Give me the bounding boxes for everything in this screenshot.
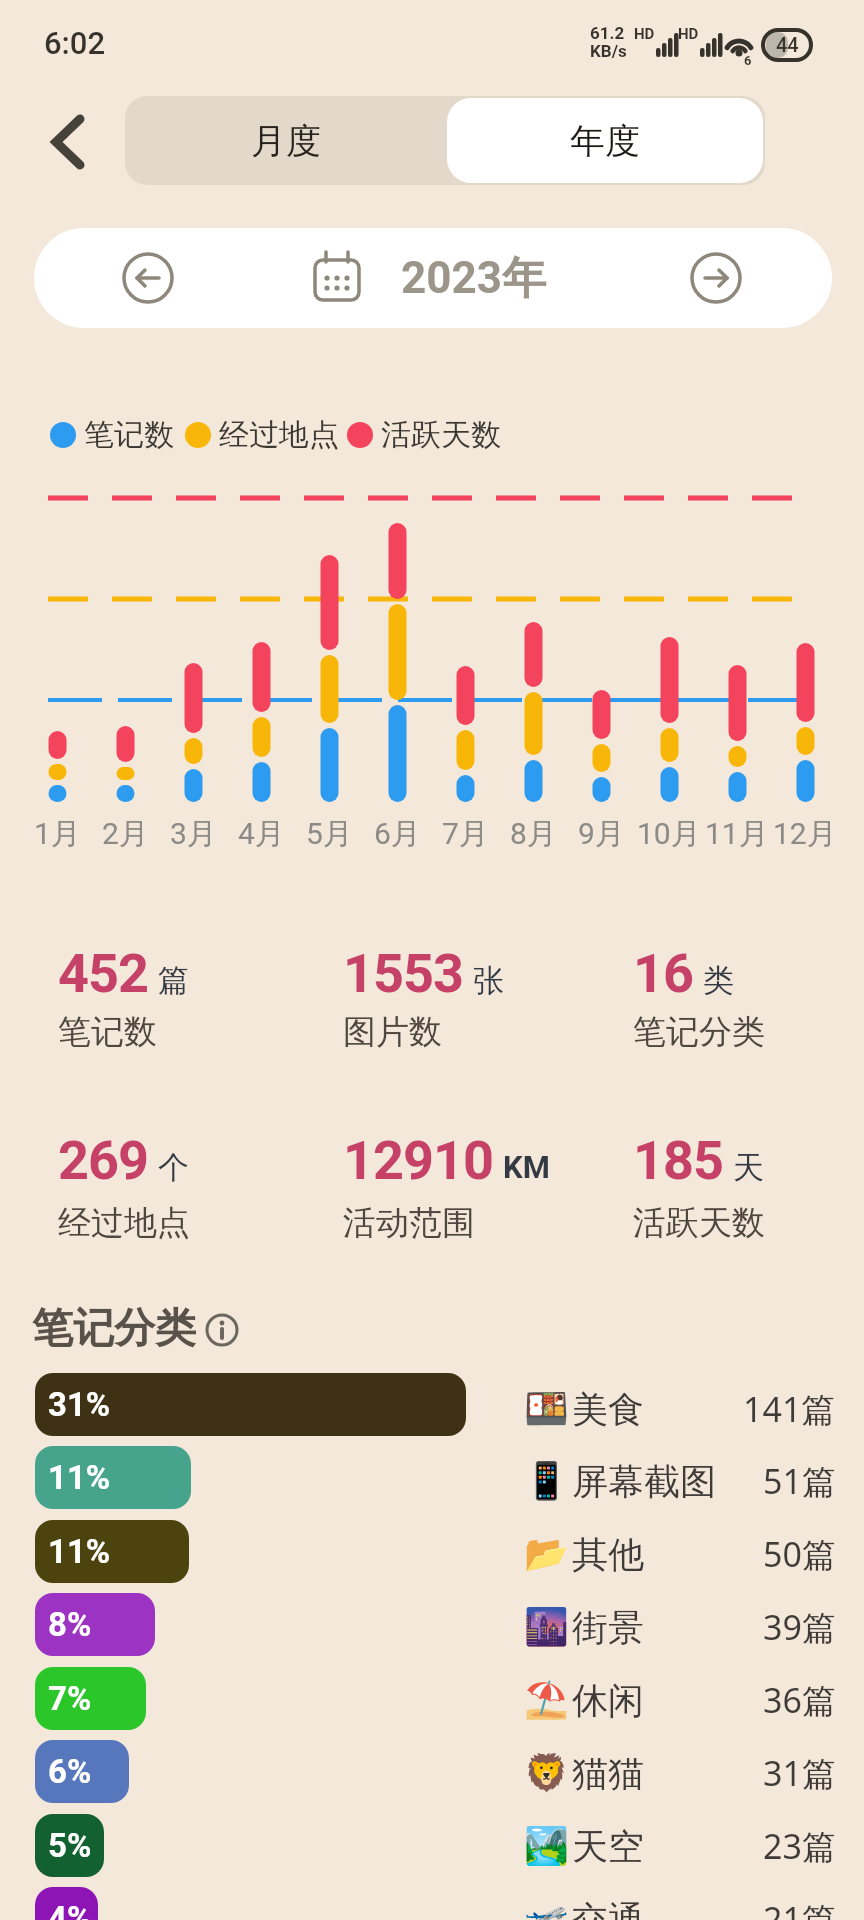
staticText: 其他 (572, 1532, 644, 1577)
staticText: 美食 (572, 1387, 644, 1432)
button[interactable]: 11% (35, 1446, 191, 1509)
staticText: 11% (48, 1458, 111, 1497)
staticText: 📂 (524, 1533, 569, 1575)
button[interactable]: 月度 (125, 96, 447, 185)
staticText: 交通 (572, 1897, 644, 1920)
staticText: 141篇 (743, 1386, 836, 1432)
staticText: 3月 (170, 815, 217, 853)
staticText: 张 (473, 961, 504, 1000)
staticText: 4% (48, 1899, 92, 1920)
button[interactable] (524, 1518, 836, 1590)
staticText: 11月 (705, 815, 769, 853)
staticText: 7月 (442, 815, 489, 853)
staticText: 6 (744, 53, 752, 68)
staticText: 笔记分类 (32, 1303, 196, 1355)
button[interactable] (524, 1445, 836, 1517)
staticText: 12月 (773, 815, 837, 853)
staticText: 5% (48, 1826, 92, 1865)
button[interactable]: 31% (35, 1373, 466, 1436)
staticText: 6月 (374, 815, 421, 853)
button[interactable] (524, 1373, 836, 1445)
staticText: HD (678, 25, 699, 43)
staticText: 笔记数 (58, 1011, 157, 1053)
staticText: 44 (776, 33, 799, 56)
staticText: 23篇 (763, 1823, 836, 1869)
staticText: 31篇 (763, 1750, 836, 1796)
staticText: 活跃天数 (633, 1202, 765, 1244)
staticText: 4月 (238, 815, 285, 853)
staticText: 图片数 (343, 1011, 442, 1053)
staticText: 经过地点 (219, 416, 339, 454)
staticText: 51篇 (763, 1458, 836, 1504)
staticText: 休闲 (572, 1678, 644, 1723)
staticText: 🏞 (524, 1825, 569, 1867)
button[interactable]: 4% (35, 1887, 98, 1920)
staticText: 猫猫 (572, 1751, 644, 1796)
staticText: 185 (633, 1129, 723, 1192)
staticText: 11% (48, 1532, 111, 1571)
button[interactable] (40, 110, 96, 174)
button[interactable]: 8% (35, 1593, 155, 1656)
staticText: 6% (48, 1752, 92, 1791)
staticText: 16 (633, 942, 693, 1005)
button[interactable] (524, 1591, 836, 1663)
staticText: 8% (48, 1605, 92, 1644)
button[interactable]: 6% (35, 1740, 129, 1803)
button[interactable] (524, 1664, 836, 1736)
staticText: 269 (58, 1129, 148, 1192)
staticText: ⛱ (524, 1679, 569, 1721)
staticText: 街景 (572, 1605, 644, 1650)
staticText: 个 (158, 1148, 189, 1187)
staticText: 月度 (251, 119, 321, 163)
staticText: 61.2 (590, 23, 625, 43)
staticText: 活跃天数 (381, 416, 501, 454)
staticText: 笔记分类 (633, 1011, 765, 1053)
staticText: 📱 (524, 1460, 569, 1502)
staticText: 21篇 (763, 1896, 836, 1920)
button[interactable] (524, 1883, 836, 1920)
staticText: 2月 (102, 815, 149, 853)
staticText: 🛫 (524, 1898, 569, 1920)
staticText: 8月 (510, 815, 557, 853)
staticText: 36篇 (763, 1677, 836, 1723)
staticText: 屏幕截图 (572, 1459, 716, 1504)
button[interactable] (524, 1810, 836, 1882)
staticText: 12910 (343, 1129, 493, 1192)
staticText: 篇 (158, 961, 189, 1000)
staticText: 7% (48, 1679, 92, 1718)
button[interactable]: 5% (35, 1814, 104, 1877)
staticText: 10月 (637, 815, 701, 853)
staticText: KM (503, 1149, 550, 1185)
staticText: 🍱 (524, 1388, 569, 1430)
staticText: 5月 (306, 815, 353, 853)
staticText: 2023年 (401, 251, 546, 306)
staticText: 6:02 (44, 25, 106, 61)
staticText: 经过地点 (58, 1202, 190, 1244)
button[interactable] (676, 238, 756, 318)
staticText: 1553 (343, 942, 463, 1005)
staticText: 31% (48, 1385, 111, 1424)
staticText: 9月 (578, 815, 625, 853)
button[interactable] (108, 238, 188, 318)
button[interactable]: 年度 (447, 98, 763, 183)
button[interactable]: 7% (35, 1667, 146, 1730)
staticText: 年度 (570, 119, 640, 163)
staticText: 类 (703, 961, 734, 1000)
button[interactable] (524, 1737, 836, 1809)
staticText: KB/s (590, 41, 627, 61)
button[interactable]: 11% (35, 1520, 189, 1583)
staticText: 50篇 (763, 1531, 836, 1577)
staticText: 笔记数 (84, 416, 174, 454)
staticText: 452 (58, 942, 148, 1005)
button[interactable]: 2023年 (373, 238, 573, 318)
staticText: 天 (733, 1148, 764, 1187)
staticText: 1月 (34, 815, 81, 853)
staticText: 39篇 (763, 1604, 836, 1650)
staticText: HD (634, 25, 655, 43)
staticText: 🦁 (524, 1752, 569, 1794)
staticText: 活动范围 (343, 1202, 475, 1244)
staticText: 天空 (572, 1824, 644, 1869)
staticText: 🌆 (524, 1606, 569, 1648)
